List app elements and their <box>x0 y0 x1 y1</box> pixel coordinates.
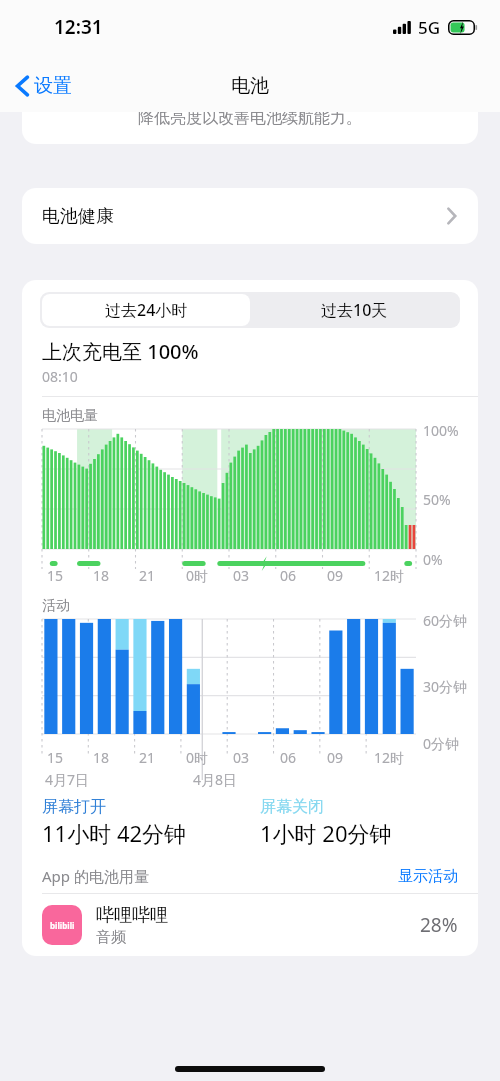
staticText: 5G <box>418 16 441 39</box>
staticText: 18 <box>93 748 110 767</box>
staticText: 15 <box>47 566 64 585</box>
staticText: 12:31 <box>54 14 103 40</box>
staticText: 哔哩哔哩 <box>96 904 168 927</box>
button[interactable]: 显示活动 <box>398 867 458 886</box>
staticText: 4月8日 <box>193 770 238 789</box>
staticText: 12时 <box>374 566 405 585</box>
staticText: 100% <box>423 421 459 440</box>
button[interactable]: 设置 <box>10 68 78 104</box>
staticText: 09 <box>327 748 344 767</box>
staticText: 0分钟 <box>423 734 460 753</box>
button[interactable]: 过去24小时 <box>42 294 250 326</box>
staticText: 4月7日 <box>45 770 90 789</box>
staticText: 过去10天 <box>321 299 388 321</box>
staticText: 过去24小时 <box>105 299 188 321</box>
staticText: 15 <box>47 748 64 767</box>
staticText: 0时 <box>186 566 209 585</box>
staticText: 03 <box>233 566 250 585</box>
staticText: 0时 <box>186 748 209 767</box>
staticText: 28% <box>420 912 458 938</box>
staticText: 降低亮度以改善电池续航能力。 <box>138 112 362 128</box>
staticText: 08:10 <box>42 367 78 386</box>
staticText: 11小时 42分钟 <box>42 818 187 848</box>
staticText: 电池健康 <box>42 205 114 228</box>
staticText: 06 <box>280 566 297 585</box>
button[interactable]: 电池健康 <box>22 188 478 244</box>
staticText: 21 <box>139 566 156 585</box>
staticText: 12时 <box>374 748 405 767</box>
staticText: 1小时 20分钟 <box>260 818 392 848</box>
staticText: 音频 <box>96 928 126 947</box>
button[interactable]: bilibili <box>22 894 478 956</box>
other: More <box>447 208 456 224</box>
staticText: 21 <box>139 748 156 767</box>
staticText: 18 <box>93 566 110 585</box>
staticText: 60分钟 <box>423 611 468 630</box>
staticText: 03 <box>233 748 250 767</box>
staticText: 设置 <box>34 74 72 98</box>
staticText: 09 <box>327 566 344 585</box>
staticText: App 的电池用量 <box>42 866 149 886</box>
staticText: 电池电量 <box>42 407 98 425</box>
staticText: 上次充电至 100% <box>42 338 199 365</box>
staticText: 06 <box>280 748 297 767</box>
button[interactable]: 过去10天 <box>250 294 458 326</box>
staticText: 30分钟 <box>423 677 468 696</box>
staticText: 电池 <box>231 74 269 98</box>
staticText: 活动 <box>42 597 70 615</box>
button[interactable]: 降低亮度以改善电池续航能力。 <box>22 112 478 144</box>
staticText: 显示活动 <box>398 867 458 886</box>
staticText: bilibili <box>50 920 75 931</box>
staticText: 0% <box>423 550 443 569</box>
staticText: 50% <box>423 490 451 509</box>
staticText: 屏幕关闭 <box>260 797 324 817</box>
staticText: 屏幕打开 <box>42 797 106 817</box>
